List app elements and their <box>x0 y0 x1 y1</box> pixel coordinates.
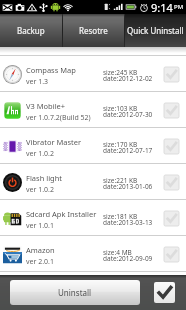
staticText: size:181 KB date:2013-03-13 <box>103 212 153 227</box>
staticText: Vibrator Master <box>26 137 82 147</box>
staticText: ver 1.0.7.2(Build 52) <box>26 113 91 123</box>
staticText: size:170 KB date:2012-07-17 <box>103 140 153 155</box>
button[interactable]: Backup <box>0 14 62 47</box>
staticText: PM <box>174 3 184 11</box>
button[interactable]: Select Compass Map <box>164 67 179 82</box>
staticText: ver 1.0.2 <box>26 149 54 159</box>
button[interactable]: Flash light <box>0 164 186 200</box>
button[interactable]: Select V3 Mobile+ <box>164 103 179 118</box>
button[interactable]: Compass Map <box>0 56 186 92</box>
button[interactable]: Sdcard Apk Installer <box>0 200 186 236</box>
staticText: Amazon <box>26 245 55 255</box>
staticText: size:245 KB date:2012-12-02 <box>103 68 153 83</box>
button[interactable]: Resotre <box>63 14 124 47</box>
button[interactable]: V3 Mobile+ <box>0 92 186 128</box>
button[interactable]: Select Flash light <box>164 175 179 190</box>
staticText: Sdcard Apk Installer <box>26 209 97 219</box>
button[interactable]: Quick Uninstall <box>125 14 186 47</box>
staticText: ver 1.0.1 <box>26 221 54 231</box>
staticText: size:4 MB date:2012-09-09 <box>103 248 153 263</box>
staticText: Compass Map <box>26 65 76 75</box>
button[interactable]: Select Sdcard Apk Installer <box>164 211 179 226</box>
staticText: Flash light <box>26 173 63 183</box>
staticText: ver 2.0.1 <box>26 257 54 267</box>
staticText: Uninstall <box>58 287 92 298</box>
staticText: ver 1.3 <box>26 77 49 87</box>
button[interactable]: Select Amazon <box>164 247 179 262</box>
staticText: 9:14 <box>151 0 173 14</box>
button[interactable]: Select Vibrator Master <box>164 139 179 154</box>
staticText: Quick Uninstall <box>127 25 184 36</box>
button[interactable]: Uninstall <box>10 280 140 305</box>
staticText: size:103 KB date:2012-07-30 <box>103 104 153 119</box>
staticText: size:221 KB date:2013-01-06 <box>103 176 153 191</box>
staticText: ver 1.0.2 <box>26 185 54 195</box>
staticText: V3 Mobile+ <box>26 101 66 111</box>
staticText: Resotre <box>79 25 108 36</box>
button[interactable]: Amazon <box>0 236 186 272</box>
button[interactable]: Vibrator Master <box>0 128 186 164</box>
staticText: Backup <box>17 25 45 36</box>
button[interactable]: Select all <box>154 282 175 303</box>
